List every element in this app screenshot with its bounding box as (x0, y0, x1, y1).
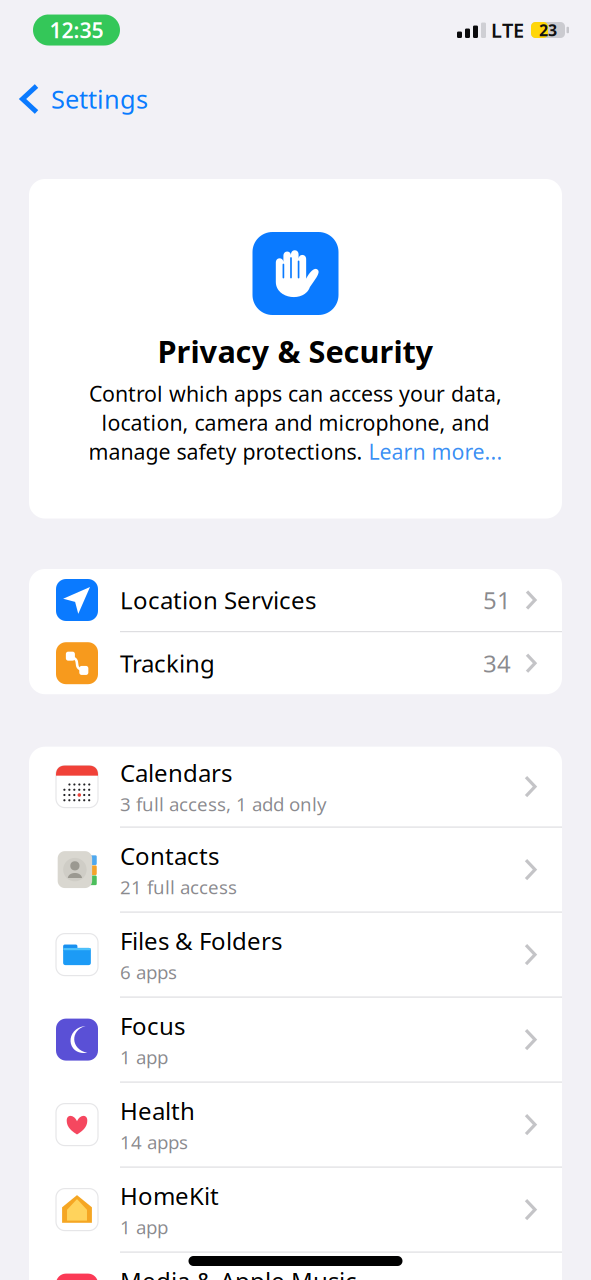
staticText: 12:35 (49, 16, 103, 44)
button[interactable]: Tracking (29, 632, 562, 694)
button[interactable]: Files & Folders (29, 913, 562, 996)
staticText: Health (120, 1095, 195, 1127)
staticText: 1 app (120, 1045, 168, 1069)
staticText: Learn more... (368, 437, 502, 466)
staticText: Control which apps can access your data, (89, 379, 502, 408)
staticText: 34 (483, 647, 511, 679)
staticText: Files & Folders (120, 925, 282, 957)
staticText: Tracking (120, 647, 215, 679)
button[interactable]: Health (29, 1083, 562, 1166)
button[interactable]: Learn more... (368, 437, 502, 466)
staticText: Privacy & Security (157, 331, 433, 371)
staticText: 23 (539, 19, 557, 41)
button[interactable]: Contacts (29, 828, 562, 911)
staticText: Calendars (120, 757, 232, 789)
staticText: 3 full access, 1 add only (120, 792, 327, 816)
staticText: location, camera and microphone, and (101, 408, 489, 437)
staticText: Settings (51, 82, 148, 116)
staticText: 1 app (120, 1215, 168, 1239)
button[interactable]: HomeKit (29, 1168, 562, 1251)
staticText: 21 full access (120, 875, 237, 899)
staticText: LTE (491, 17, 524, 43)
button[interactable]: Focus (29, 998, 562, 1081)
staticText: manage safety protections. (88, 437, 368, 466)
button[interactable]: Location Services (29, 569, 562, 631)
staticText: 14 apps (120, 1130, 188, 1154)
button[interactable]: Settings (0, 60, 148, 119)
button[interactable]: Media & Apple Music (29, 1253, 562, 1280)
staticText: 51 (483, 584, 511, 616)
button[interactable]: Calendars (29, 747, 562, 826)
staticText: Location Services (120, 584, 316, 616)
staticText: Focus (120, 1010, 185, 1042)
staticText: Contacts (120, 840, 219, 872)
staticText: HomeKit (120, 1180, 219, 1212)
staticText: Media & Apple Music (120, 1265, 357, 1280)
staticText: 6 apps (120, 960, 177, 984)
